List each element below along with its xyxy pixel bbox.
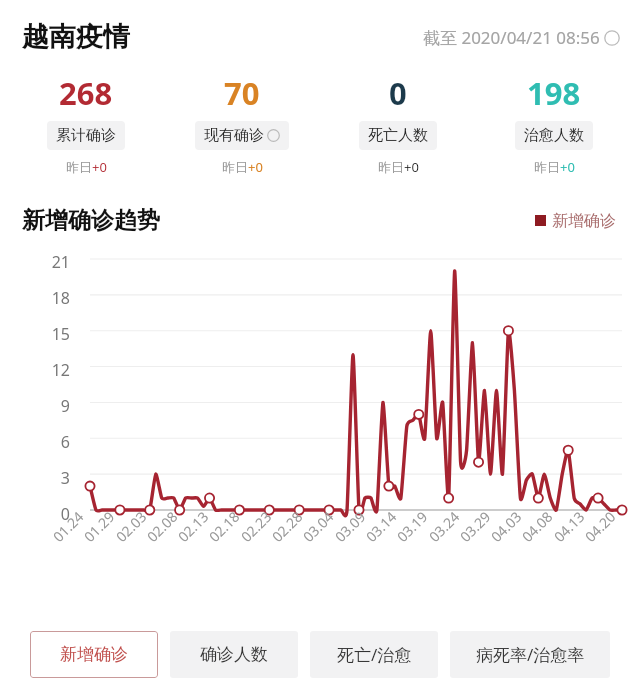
staticText: 6 bbox=[0, 431, 70, 453]
staticText: 死亡人数 bbox=[368, 126, 428, 145]
staticText: 新增确诊 bbox=[60, 644, 128, 665]
staticText: 12 bbox=[0, 359, 70, 381]
staticText: 04.13 bbox=[550, 507, 588, 546]
staticText: 04.03 bbox=[487, 507, 525, 546]
staticText: 02.28 bbox=[268, 507, 306, 546]
staticText: 治愈人数 bbox=[524, 126, 584, 145]
button[interactable]: 0 bbox=[320, 72, 476, 176]
staticText: 死亡/治愈 bbox=[337, 643, 412, 666]
staticText: 02.08 bbox=[143, 507, 181, 546]
staticText: 3 bbox=[0, 467, 70, 489]
staticText: 02.23 bbox=[237, 507, 275, 546]
staticText: 昨日+0 bbox=[222, 158, 263, 176]
staticText: 01.29 bbox=[80, 507, 118, 546]
button[interactable]: 198 bbox=[476, 72, 632, 176]
staticText: 昨日+0 bbox=[378, 158, 419, 176]
button[interactable]: 死亡/治愈 bbox=[310, 631, 438, 678]
staticText: 新增确诊 bbox=[552, 211, 616, 231]
staticText: 02.03 bbox=[112, 507, 150, 546]
staticText: 03.04 bbox=[299, 507, 337, 546]
staticText: 21 bbox=[0, 251, 70, 273]
staticText: 昨日+0 bbox=[66, 158, 107, 176]
staticText: 01.24 bbox=[49, 507, 87, 546]
staticText: 截至 2020/04/21 08:56 bbox=[423, 26, 600, 49]
staticText: 03.24 bbox=[425, 507, 463, 546]
staticText: 新增确诊趋势 bbox=[22, 206, 160, 235]
button[interactable]: 70 bbox=[164, 72, 320, 176]
button[interactable]: 病死率/治愈率 bbox=[450, 631, 610, 678]
staticText: 02.13 bbox=[174, 507, 212, 546]
staticText: 268 bbox=[59, 72, 113, 114]
staticText: 0 bbox=[389, 72, 407, 114]
staticText: 现有确诊 bbox=[204, 126, 264, 145]
staticText: 病死率/治愈率 bbox=[476, 643, 585, 666]
staticText: 03.29 bbox=[456, 507, 494, 546]
staticText: 03.19 bbox=[393, 507, 431, 546]
staticText: 确诊人数 bbox=[200, 644, 268, 665]
staticText: 15 bbox=[0, 323, 70, 345]
staticText: 越南疫情 bbox=[22, 20, 130, 54]
staticText: 03.14 bbox=[362, 507, 400, 546]
staticText: 累计确诊 bbox=[56, 126, 116, 145]
staticText: 0 bbox=[0, 503, 70, 525]
staticText: 03.09 bbox=[331, 507, 369, 546]
staticText: 04.20 bbox=[581, 507, 619, 546]
staticText: 198 bbox=[527, 72, 581, 114]
button[interactable]: 确诊人数 bbox=[170, 631, 298, 678]
staticText: 04.08 bbox=[518, 507, 556, 546]
staticText: 70 bbox=[224, 72, 260, 114]
staticText: 18 bbox=[0, 287, 70, 309]
staticText: 昨日+0 bbox=[534, 158, 575, 176]
staticText: 9 bbox=[0, 395, 70, 417]
button[interactable]: 268 bbox=[8, 72, 164, 176]
button[interactable]: 数据说明 bbox=[423, 26, 620, 49]
button[interactable]: 新增确诊 bbox=[30, 631, 158, 678]
staticText: 02.18 bbox=[205, 507, 243, 546]
